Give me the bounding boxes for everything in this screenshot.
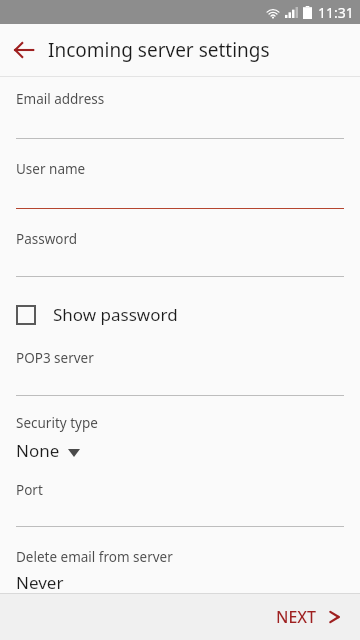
button[interactable]: None [0,437,360,464]
button[interactable]: NEXT [0,594,360,640]
staticText: Security type [16,414,98,432]
staticText: POP3 server [16,349,94,367]
staticText: None [16,439,60,462]
staticText: Show password [53,303,178,326]
staticText: NEXT [276,606,317,628]
staticText: Port [16,481,43,499]
button[interactable]: Back [0,26,48,74]
staticText: Password [16,230,78,248]
staticText: 11:31 [318,3,354,22]
staticText: Email address [16,90,105,108]
staticText: Never [16,571,64,593]
button[interactable]: Never [0,571,360,593]
staticText: User name [16,160,86,178]
staticText: Delete email from server [16,548,173,566]
button[interactable]: Show password [0,299,360,330]
staticText: Incoming server settings [48,37,270,63]
